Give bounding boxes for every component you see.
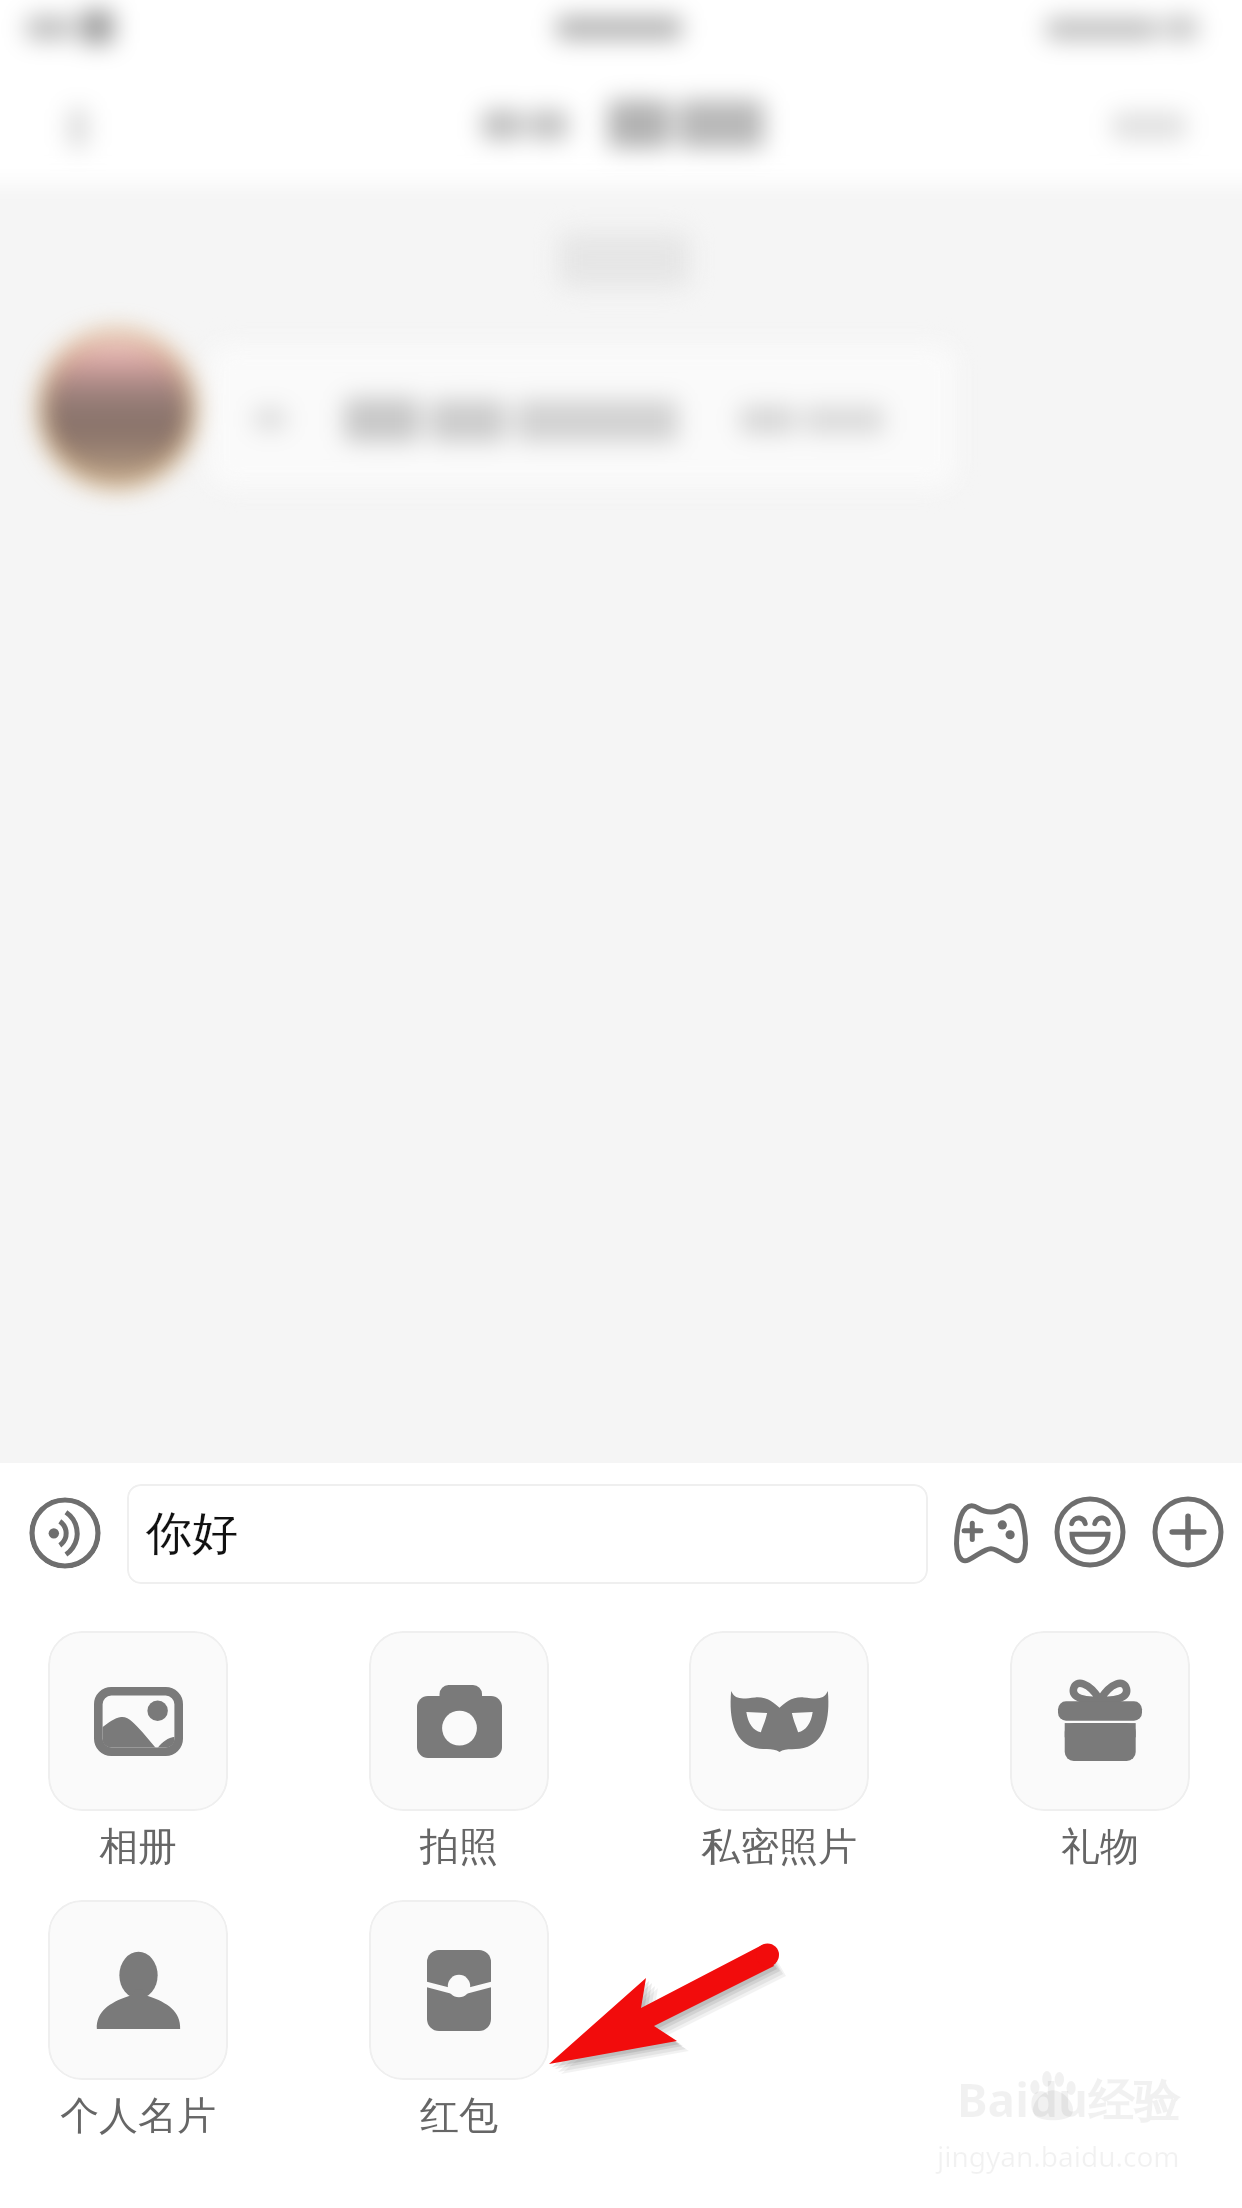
staticText: Baidu经验 — [957, 2068, 1180, 2131]
staticText: 相册 — [99, 1822, 177, 1871]
staticText: 礼物 — [1061, 1822, 1139, 1871]
staticText: 私密照片 — [701, 1822, 857, 1871]
button[interactable]: Voice input — [29, 1497, 101, 1569]
button[interactable]: More — [1152, 1496, 1224, 1568]
button[interactable]: 你好 — [127, 1484, 928, 1584]
staticText: 你好 — [146, 1505, 238, 1563]
button[interactable]: 礼物 — [1010, 1631, 1190, 1871]
staticText: 红包 — [420, 2091, 498, 2140]
staticText: jingyan.baidu.com — [937, 2137, 1180, 2175]
button[interactable]: 个人名片 — [48, 1900, 228, 2140]
button[interactable]: Games — [946, 1497, 1036, 1569]
button[interactable]: 私密照片 — [689, 1631, 869, 1871]
button[interactable]: 相册 — [48, 1631, 228, 1871]
staticText: 拍照 — [420, 1822, 498, 1871]
staticText: 个人名片 — [60, 2091, 216, 2140]
button[interactable]: 拍照 — [369, 1631, 549, 1871]
button[interactable]: Emoji — [1054, 1496, 1126, 1568]
button[interactable]: 红包 — [369, 1900, 549, 2140]
